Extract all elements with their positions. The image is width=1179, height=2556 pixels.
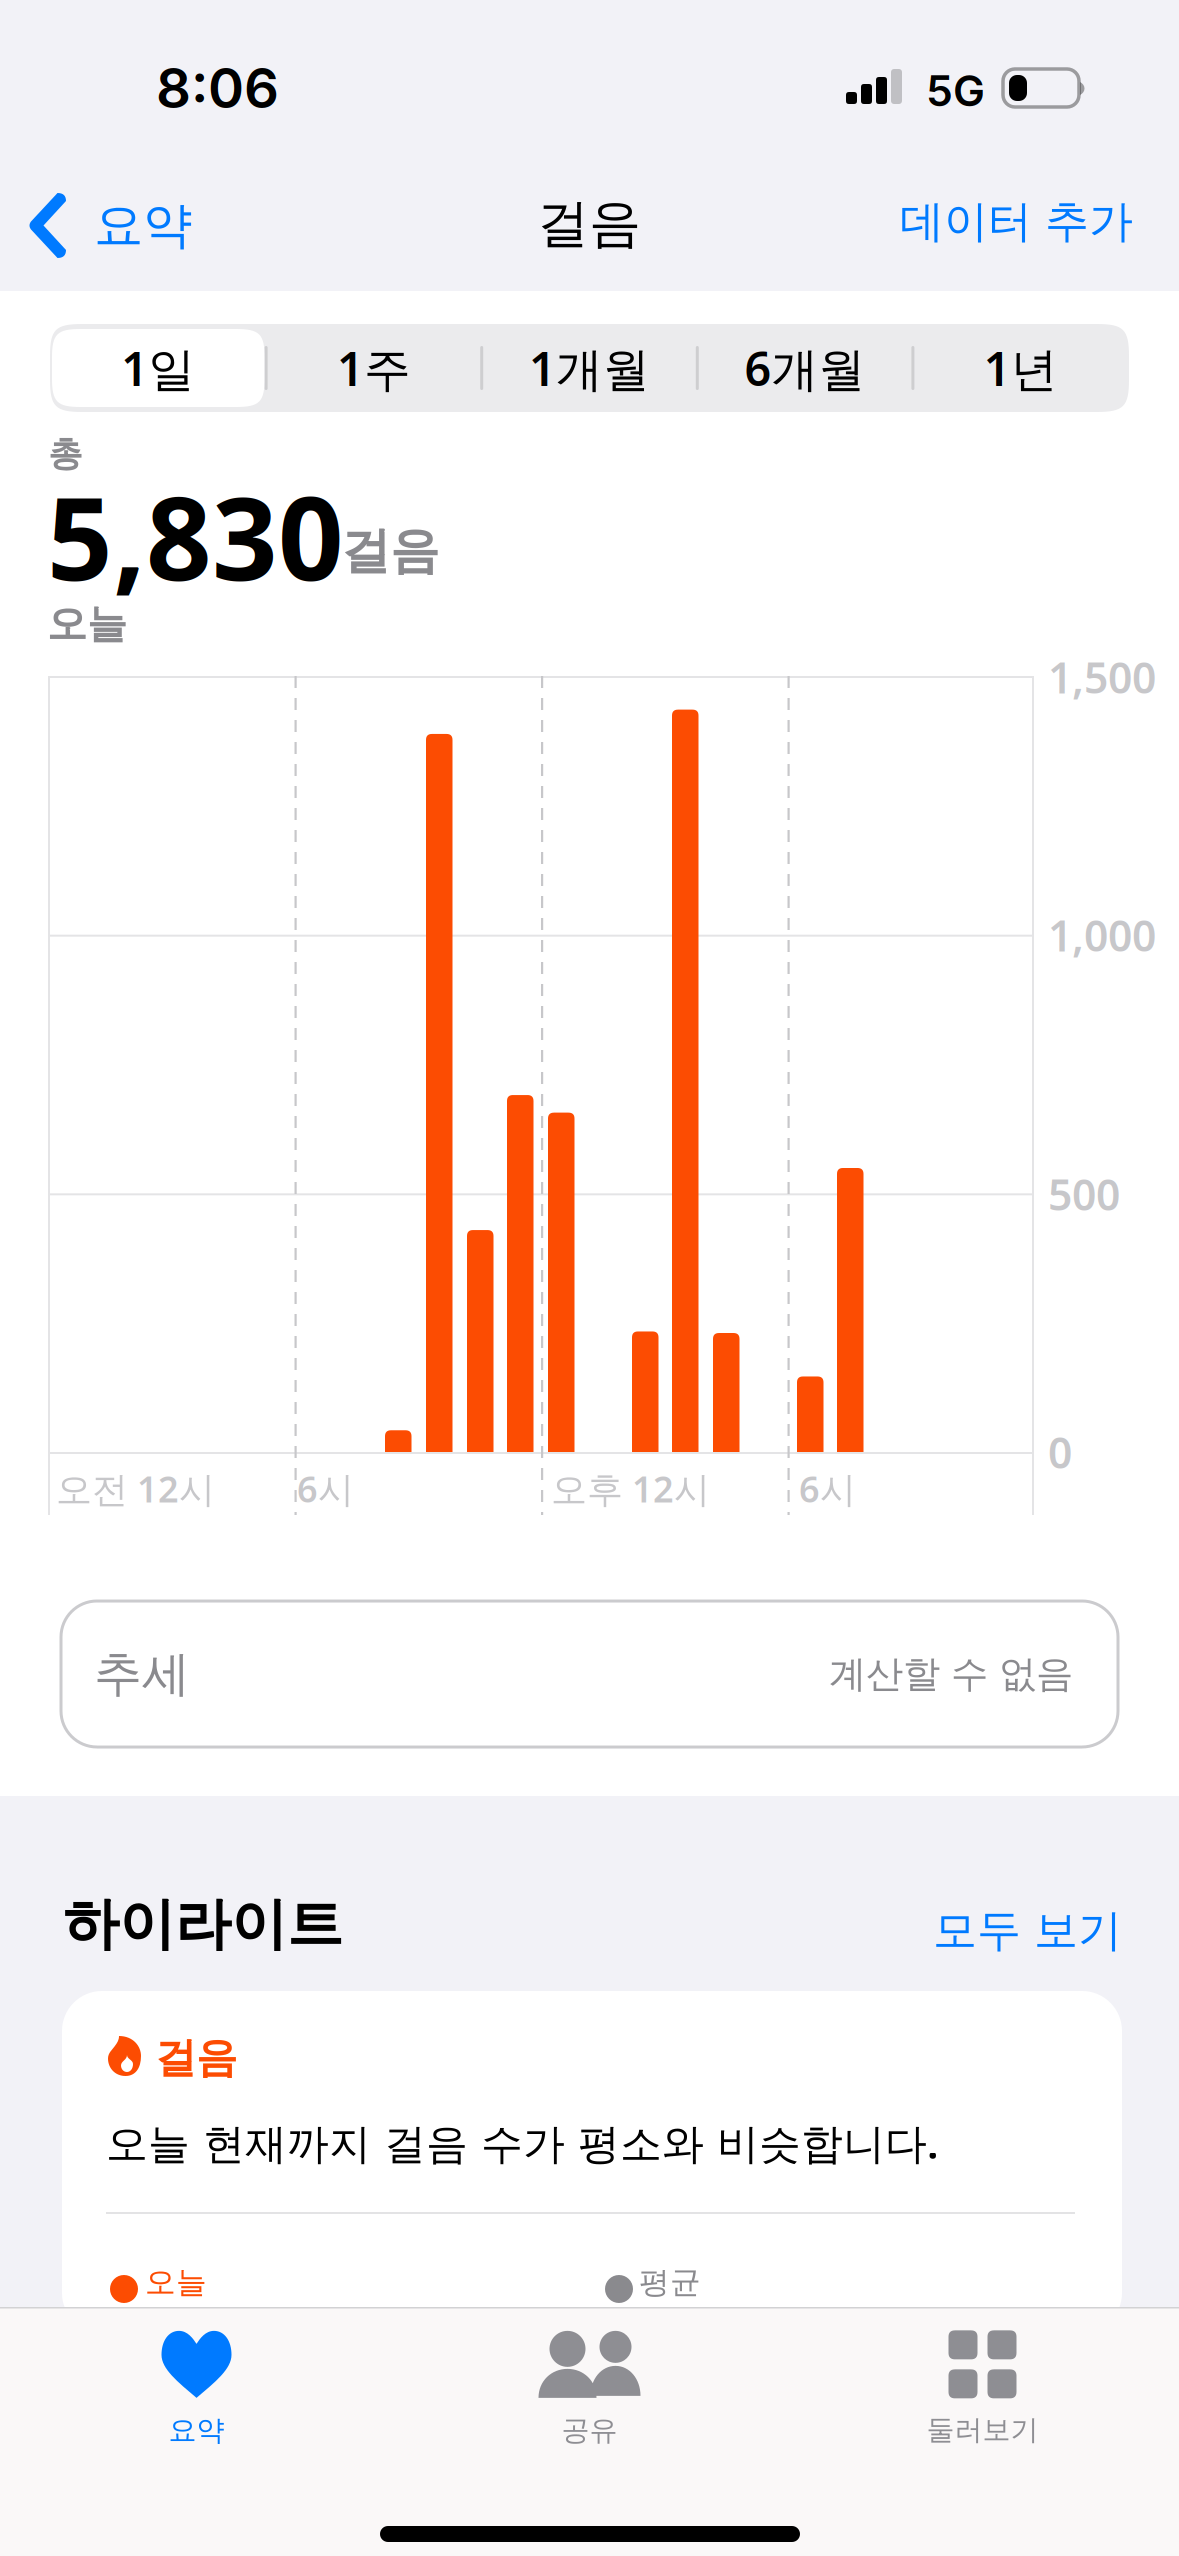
- staticText: 오늘 현재까지 걸음 수가 평소와 비슷합니다.: [106, 2114, 939, 2171]
- staticText: 6개월: [745, 336, 866, 400]
- staticText: 1년: [984, 336, 1058, 400]
- button[interactable]: 공유: [393, 2319, 786, 2459]
- staticText: 1,500: [1048, 648, 1156, 706]
- staticText: 계산할 수 없음: [829, 1650, 1073, 1697]
- staticText: 추세: [94, 1644, 190, 1704]
- staticText: 모두 보기: [933, 1903, 1122, 1958]
- staticText: 데이터 추가: [900, 194, 1133, 249]
- staticText: 1개월: [529, 336, 650, 400]
- staticText: 요약: [94, 194, 192, 256]
- button[interactable]: 데이터 추가: [872, 166, 1179, 279]
- staticText: 요약: [168, 2413, 224, 2448]
- staticText: 6시: [297, 1464, 354, 1513]
- button[interactable]: 요약: [0, 166, 216, 288]
- staticText: 걸음: [341, 520, 439, 582]
- button[interactable]: 모두 보기: [903, 1885, 1152, 1976]
- button[interactable]: 1일: [52, 329, 265, 407]
- staticText: 1일: [121, 336, 195, 400]
- button[interactable]: 1주: [268, 329, 480, 407]
- staticText: 걸음: [537, 191, 641, 256]
- button[interactable]: 요약: [0, 2319, 393, 2459]
- button[interactable]: 1년: [914, 329, 1127, 407]
- staticText: 공유: [561, 2413, 617, 2448]
- staticText: 1,000: [1048, 906, 1156, 964]
- staticText: 1주: [337, 336, 411, 400]
- staticText: 0: [1048, 1423, 1072, 1481]
- staticText: 걸음: [155, 2032, 237, 2084]
- button[interactable]: 6개월: [699, 329, 911, 407]
- staticText: 5,830: [47, 458, 344, 614]
- staticText: 오후 12시: [551, 1464, 710, 1513]
- button[interactable]: 둘러보기: [786, 2319, 1179, 2459]
- staticText: 오전 12시: [56, 1464, 215, 1513]
- button[interactable]: 1개월: [483, 329, 696, 407]
- button[interactable]: 걸음: [62, 1991, 1122, 2333]
- staticText: 오늘: [47, 599, 127, 649]
- staticText: 총: [48, 432, 83, 476]
- staticText: 오늘: [145, 2263, 207, 2302]
- staticText: 8:06: [156, 55, 279, 121]
- staticText: 하이라이트: [63, 1889, 343, 1959]
- staticText: 둘러보기: [926, 2412, 1038, 2448]
- staticText: 6시: [799, 1464, 856, 1513]
- staticText: 500: [1048, 1165, 1120, 1223]
- staticText: 평균: [639, 2263, 701, 2302]
- staticText: 5G: [926, 65, 985, 117]
